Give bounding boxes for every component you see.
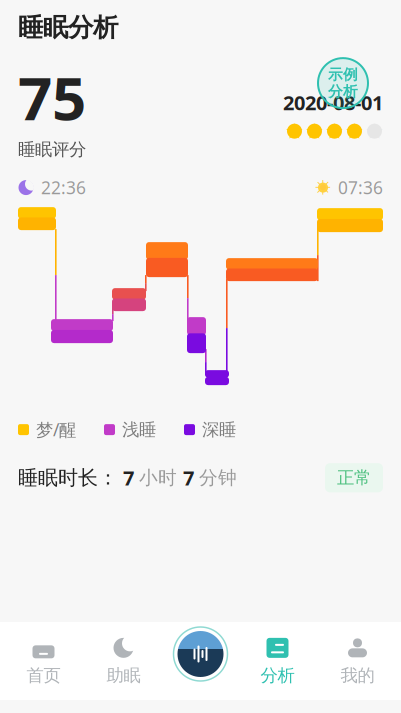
staticText: ★	[305, 119, 324, 143]
button[interactable]: 首页	[3, 622, 83, 700]
button[interactable]: 助眠	[83, 622, 163, 700]
staticText: 助眠	[106, 665, 140, 686]
button[interactable]: 我的	[317, 622, 397, 700]
staticText: ★	[345, 119, 364, 143]
staticText: 2020-08-01	[283, 89, 383, 116]
staticText: 分析	[260, 665, 294, 686]
staticText: 7	[183, 464, 199, 491]
staticText: 正常	[337, 467, 371, 488]
staticText: 22:36	[41, 176, 86, 199]
staticText: ★	[325, 119, 344, 143]
staticText: 梦/醒	[36, 418, 76, 441]
staticText: 深睡	[202, 419, 236, 440]
staticText: 睡眠时长：	[18, 465, 118, 490]
staticText: 小时	[139, 466, 183, 489]
button[interactable]: 分析	[237, 622, 317, 700]
staticText: 我的	[340, 665, 374, 686]
staticText: 分钟	[199, 466, 237, 489]
staticText: 浅睡	[122, 419, 156, 440]
staticText: 睡眠评分	[18, 139, 86, 160]
staticText: 7	[118, 464, 139, 491]
staticText: 75	[18, 57, 86, 137]
staticText: 首页	[26, 665, 60, 686]
staticText: 睡眠分析	[18, 12, 118, 43]
button[interactable]: 录音	[168, 622, 232, 686]
staticText: ☀	[314, 176, 332, 199]
staticText: 示例	[328, 66, 358, 84]
staticText: ★	[285, 119, 304, 143]
staticText: 07:36	[338, 176, 383, 199]
staticText: ★	[365, 119, 384, 143]
staticText: 分析	[328, 83, 358, 101]
